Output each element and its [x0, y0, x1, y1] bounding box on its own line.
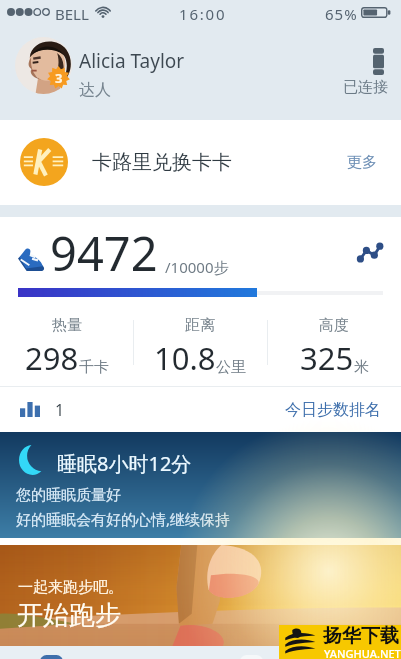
staticText: YANGHUA.NET — [324, 646, 401, 659]
button[interactable]: Step trend chart — [353, 239, 387, 266]
staticText: 一起来跑步吧。 — [18, 578, 123, 597]
staticText: /10000步 — [165, 257, 229, 277]
staticText: 达人 — [79, 80, 111, 100]
staticText: 3 — [55, 69, 63, 87]
button[interactable]: 睡眠8小时12分 — [0, 432, 401, 538]
staticText: 325 — [300, 337, 354, 379]
button[interactable]: 1 — [0, 387, 401, 432]
staticText: 10.8 — [154, 337, 216, 379]
staticText: 65% — [325, 4, 358, 24]
staticText: 距离 — [185, 316, 215, 335]
staticText: 298 — [25, 337, 79, 379]
button[interactable]: 一起来跑步吧。 — [0, 545, 401, 646]
button[interactable]: 3 — [0, 24, 401, 120]
staticText: 米 — [354, 358, 369, 377]
staticText: 已连接 — [343, 78, 388, 97]
staticText: 千卡 — [79, 358, 109, 377]
staticText: 开始跑步 — [17, 599, 121, 632]
staticText: BELL — [55, 4, 89, 24]
staticText: 9472 — [50, 221, 158, 285]
button[interactable]: 卡路里兑换卡卡 — [0, 120, 401, 205]
staticText: 好的睡眠会有好的心情,继续保持 — [16, 509, 231, 529]
staticText: 更多 — [347, 153, 377, 172]
staticText: 睡眠8小时12分 — [57, 450, 192, 477]
staticText: 16:00 — [179, 4, 227, 24]
button[interactable]: Device connected — [341, 44, 390, 101]
staticText: Alicia Taylor — [79, 48, 185, 74]
staticText: 扬华下载 — [323, 624, 399, 648]
staticText: 热量 — [52, 316, 82, 335]
staticText: 公里 — [216, 358, 246, 377]
staticText: 您的睡眠质量好 — [16, 486, 121, 505]
staticText: 今日步数排名 — [285, 400, 381, 420]
staticText: 卡路里兑换卡卡 — [92, 150, 232, 175]
staticText: 高度 — [319, 316, 349, 335]
staticText: 1 — [55, 399, 65, 421]
